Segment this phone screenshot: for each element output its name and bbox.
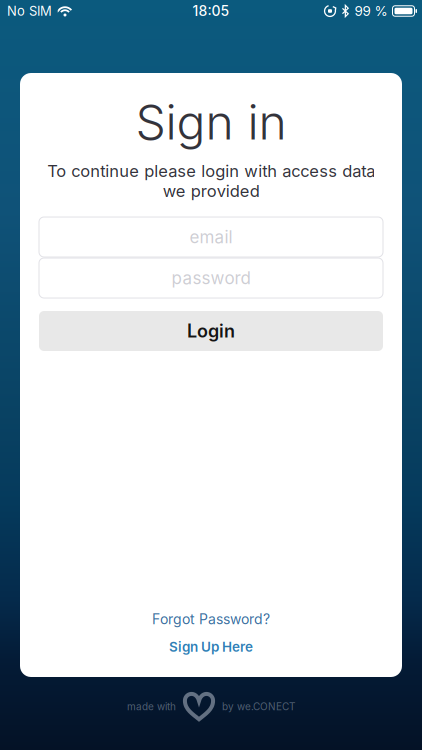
staticText: To continue please login with access dat… (47, 161, 375, 201)
button[interactable]: Forgot Password? (152, 611, 270, 628)
staticText: made with (127, 700, 176, 713)
staticText: Login (187, 320, 235, 342)
staticText: 99 % (354, 3, 387, 19)
staticText: Sign in (135, 93, 286, 151)
staticText: No SIM (7, 3, 52, 19)
staticText: Sign Up Here (169, 639, 253, 655)
staticText: password (171, 268, 250, 288)
staticText: Forgot Password? (152, 611, 270, 628)
staticText: by we.CONECT (222, 700, 295, 713)
button[interactable]: Login (39, 311, 383, 351)
button[interactable]: email (39, 217, 383, 257)
button[interactable]: Sign Up Here (169, 639, 253, 655)
staticText: 18:05 (192, 2, 229, 19)
button[interactable]: password (39, 258, 383, 298)
staticText: email (189, 227, 232, 247)
